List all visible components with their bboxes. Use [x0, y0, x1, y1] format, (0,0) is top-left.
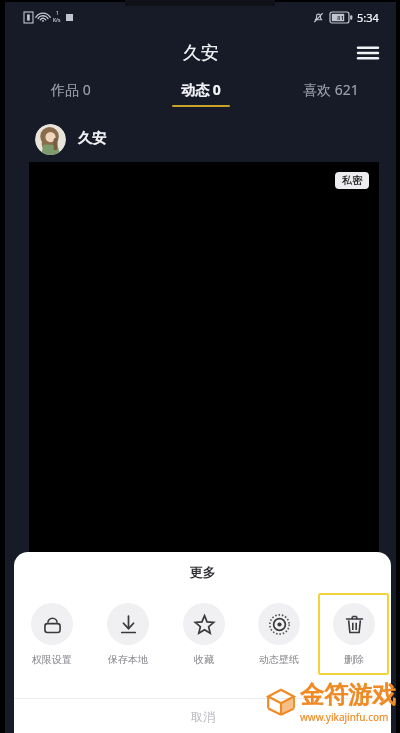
- staticText: 取消: [191, 709, 215, 724]
- staticText: 久安: [183, 42, 219, 65]
- staticText: 动态 0: [181, 80, 221, 99]
- staticText: 5:34: [357, 10, 379, 25]
- staticText: 权限设置: [32, 653, 72, 666]
- staticText: 1: [56, 10, 59, 17]
- button[interactable]: 喜欢 621: [266, 74, 396, 112]
- button[interactable]: [35, 124, 66, 155]
- staticText: 作品 0: [51, 80, 91, 99]
- staticText: 金符游戏: [300, 680, 396, 710]
- staticText: www.yikajinfu.com: [300, 710, 389, 724]
- button[interactable]: 动态壁纸: [243, 593, 314, 675]
- button[interactable]: 权限设置: [16, 593, 88, 675]
- staticText: 更多: [14, 564, 391, 580]
- button[interactable]: Menu: [348, 33, 388, 73]
- staticText: 收藏: [194, 653, 214, 666]
- button[interactable]: 保存本地: [92, 593, 164, 675]
- button[interactable]: 动态 0: [136, 74, 266, 112]
- staticText: 删除: [344, 653, 364, 666]
- staticText: K/s: [53, 17, 61, 24]
- button[interactable]: 收藏: [168, 593, 239, 675]
- button[interactable]: 取消: [14, 699, 391, 733]
- button[interactable]: 作品 0: [5, 74, 136, 112]
- staticText: 私密: [342, 174, 362, 187]
- staticText: 81: [337, 14, 344, 22]
- button[interactable]: 私密: [335, 172, 369, 189]
- staticText: 喜欢 621: [303, 80, 359, 99]
- staticText: 久安: [78, 130, 106, 148]
- staticText: 动态壁纸: [259, 653, 299, 666]
- button[interactable]: 删除: [318, 593, 389, 675]
- staticText: 保存本地: [108, 653, 148, 666]
